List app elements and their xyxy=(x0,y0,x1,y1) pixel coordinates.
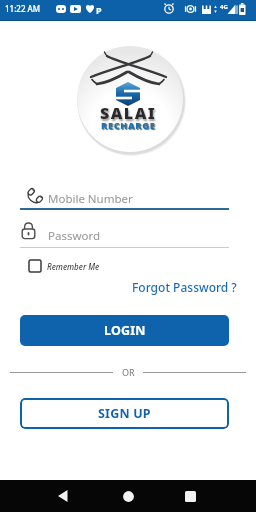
staticText: 4G xyxy=(220,3,228,11)
button[interactable]: SIGN UP xyxy=(20,398,229,429)
staticText: RECHARGE xyxy=(101,119,156,131)
button[interactable] xyxy=(177,486,203,506)
button[interactable]: Forgot Password ? xyxy=(132,279,237,295)
staticText: OR xyxy=(122,366,135,378)
staticText: SIGN UP xyxy=(98,405,151,422)
staticText: Mobile Number xyxy=(48,191,133,207)
staticText: 11:22 AM xyxy=(5,3,41,14)
button[interactable] xyxy=(50,486,76,506)
button[interactable] xyxy=(115,486,141,506)
staticText: Forgot Password ? xyxy=(132,279,237,295)
button[interactable] xyxy=(24,187,45,207)
button[interactable]: LOGIN xyxy=(20,315,229,346)
staticText: Remember Me xyxy=(47,261,100,272)
button[interactable] xyxy=(21,222,36,240)
staticText: LOGIN xyxy=(104,322,146,339)
staticText: P xyxy=(96,4,102,16)
staticText: SALAI xyxy=(100,102,157,124)
button[interactable]: Remember Me xyxy=(29,260,100,272)
staticText: Password xyxy=(48,228,101,244)
